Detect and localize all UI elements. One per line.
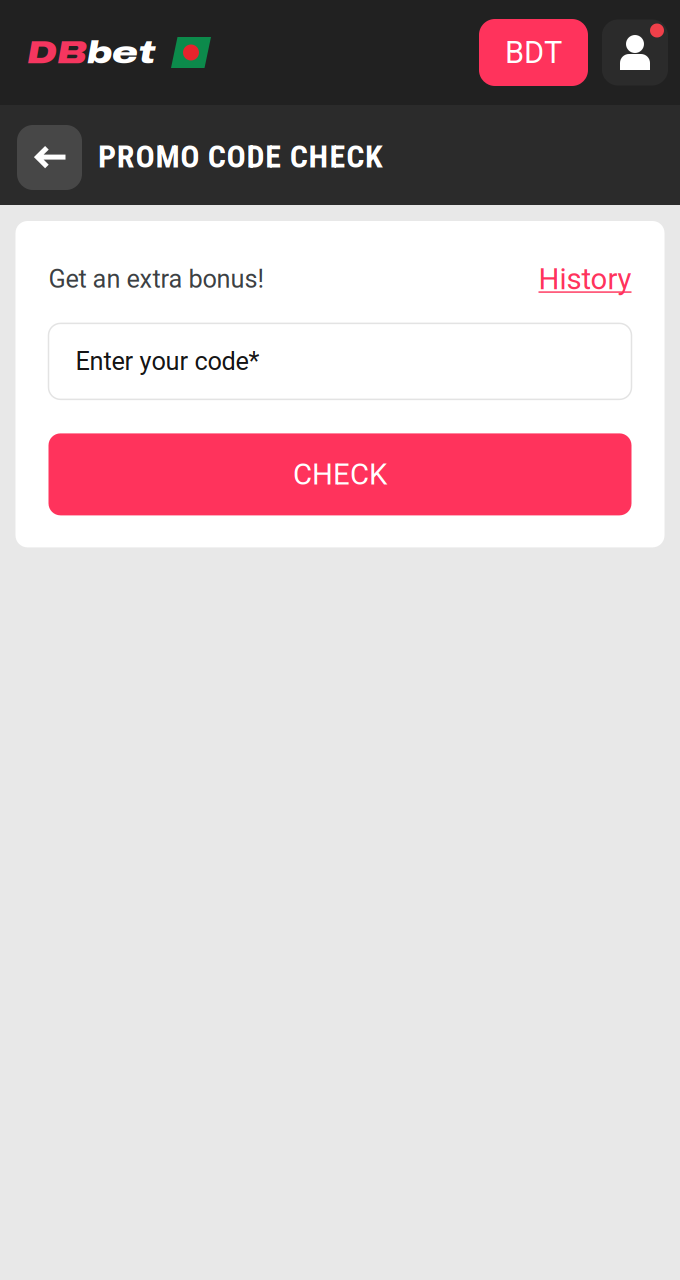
button[interactable]: Back — [17, 125, 82, 190]
staticText: History — [538, 262, 631, 296]
staticText: Get an extra bonus! — [48, 264, 264, 294]
button[interactable]: History — [538, 262, 631, 296]
staticText: DB — [27, 35, 87, 70]
staticText: BDT — [505, 34, 562, 70]
staticText: Enter your code* — [75, 346, 259, 376]
button[interactable]: CHECK — [48, 433, 631, 515]
staticText: PROMO CODE CHECK — [98, 138, 383, 175]
button[interactable]: BDT — [479, 19, 588, 86]
staticText: CHECK — [293, 457, 387, 492]
button[interactable]: DBbet home — [27, 35, 211, 70]
button[interactable]: Profile — [602, 19, 668, 85]
staticText: bet — [87, 35, 155, 70]
